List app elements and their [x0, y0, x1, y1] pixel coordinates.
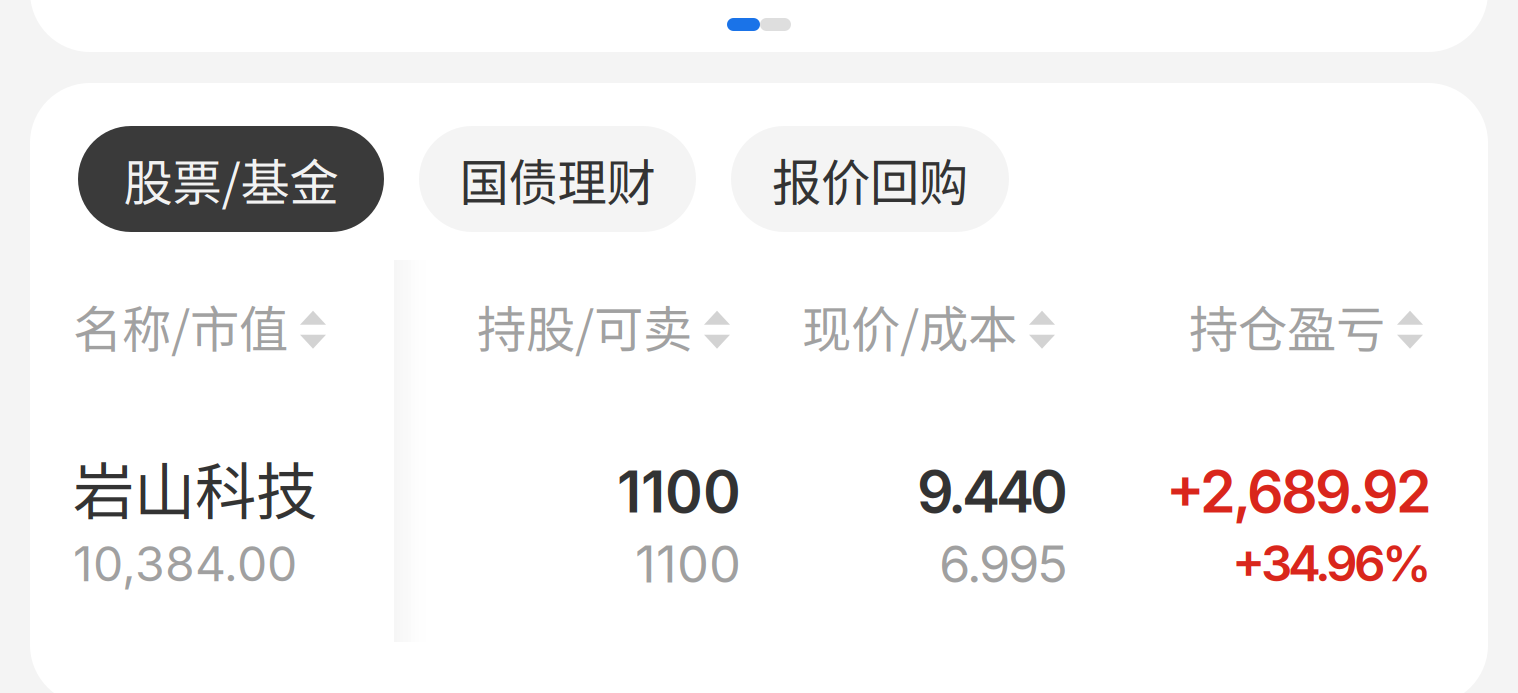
button[interactable]: 现价/成本 — [802, 290, 1055, 361]
button[interactable]: 持仓盈亏 — [1189, 290, 1423, 361]
staticText: 9.440 — [917, 457, 1068, 526]
staticText: 1100 — [617, 457, 741, 526]
staticText: +34.96% — [1232, 533, 1432, 593]
staticText: 10,384.00 — [73, 535, 297, 593]
staticText: 现价/成本 — [802, 290, 1017, 361]
button[interactable]: 国债理财 — [419, 126, 696, 232]
staticText: 股票/基金 — [123, 143, 338, 215]
staticText: 名称/市值 — [73, 290, 288, 361]
staticText: 持股/可卖 — [477, 290, 692, 361]
button[interactable]: 岩山科技 — [73, 443, 317, 593]
staticText: +2,689.92 — [1166, 457, 1432, 526]
button[interactable]: 报价回购 — [731, 126, 1009, 232]
staticText: 岩山科技 — [73, 443, 317, 532]
staticText: 1100 — [635, 533, 741, 595]
button[interactable]: 持股/可卖 — [477, 290, 730, 361]
staticText: 持仓盈亏 — [1189, 290, 1385, 361]
button[interactable]: 名称/市值 — [73, 290, 326, 361]
button[interactable]: 股票/基金 — [78, 126, 384, 232]
staticText: 6.995 — [939, 533, 1068, 595]
staticText: 国债理财 — [459, 143, 655, 215]
staticText: 报价回购 — [772, 143, 968, 215]
